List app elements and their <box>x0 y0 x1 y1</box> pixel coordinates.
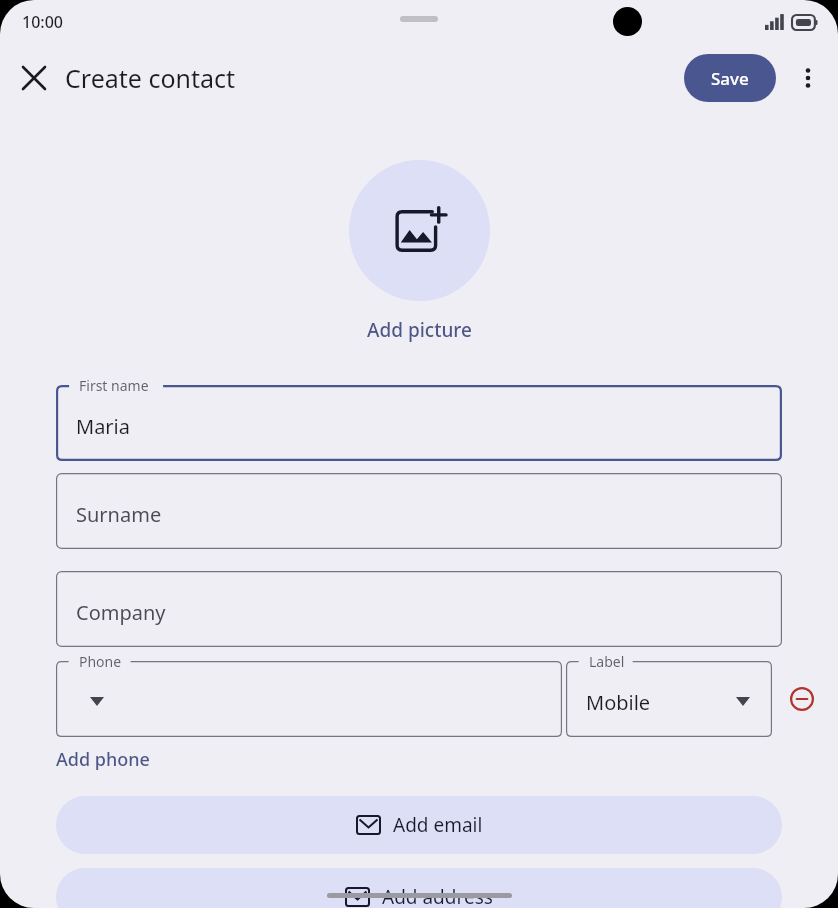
staticText: Save <box>711 67 749 90</box>
staticText: Mobile <box>586 689 651 716</box>
button[interactable]: Surname <box>56 473 782 549</box>
staticText: 10:00 <box>22 11 63 33</box>
button[interactable]: Add picture <box>349 160 490 301</box>
staticText: Add email <box>393 812 483 838</box>
button[interactable]: Company <box>56 571 782 647</box>
staticText: Add address <box>382 884 493 908</box>
staticText: Label <box>589 652 625 671</box>
button[interactable]: Remove phone <box>782 679 822 719</box>
staticText: First name <box>79 376 149 395</box>
button[interactable]: More options <box>786 56 830 100</box>
button[interactable]: First name <box>56 385 782 461</box>
button[interactable]: Add address <box>56 868 782 908</box>
staticText: Phone <box>79 652 122 671</box>
button[interactable]: Add picture <box>367 317 472 343</box>
staticText: Add picture <box>367 317 472 343</box>
staticText: Maria <box>76 413 130 440</box>
button[interactable]: Label <box>566 661 772 737</box>
staticText: Surname <box>76 501 162 528</box>
staticText: Create contact <box>65 61 236 95</box>
button[interactable]: Add phone <box>56 747 150 772</box>
button[interactable]: Close <box>12 56 56 100</box>
button[interactable]: Add email <box>56 796 782 854</box>
staticText: Company <box>76 599 166 626</box>
button[interactable]: Phone <box>56 661 562 737</box>
button[interactable]: Save <box>684 54 776 102</box>
staticText: Add phone <box>56 747 150 772</box>
